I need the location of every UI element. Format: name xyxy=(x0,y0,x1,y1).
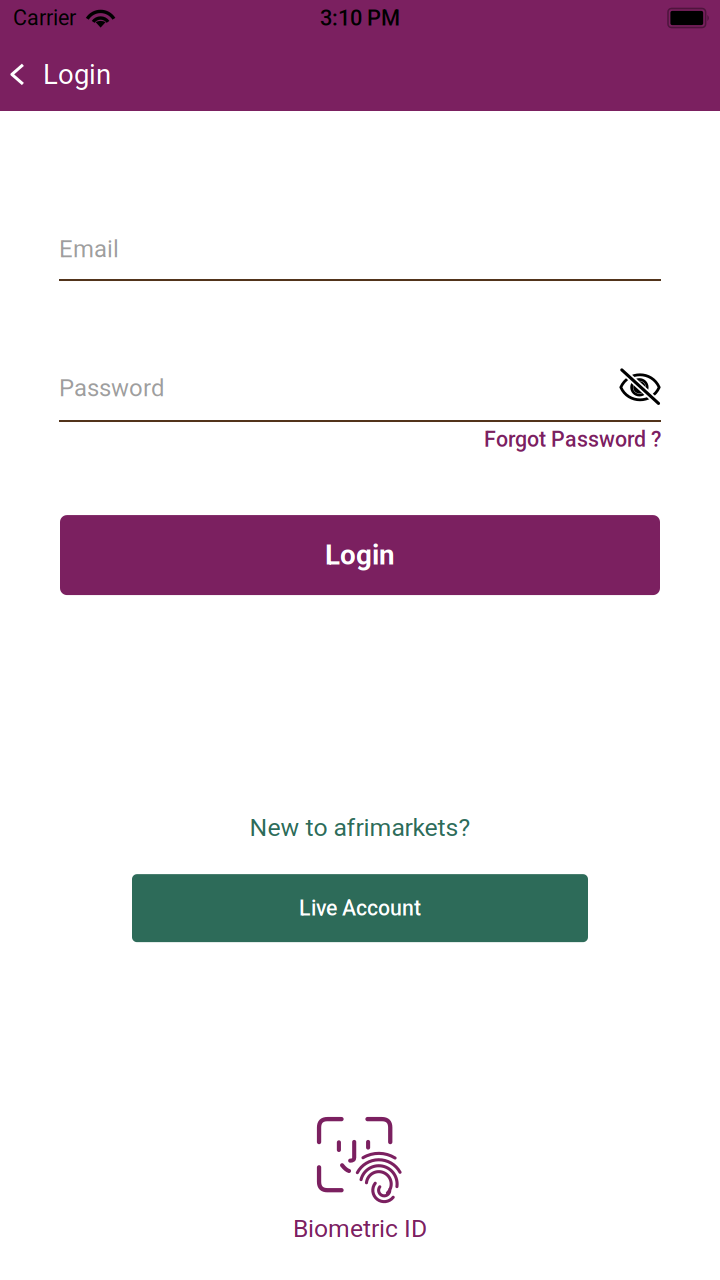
staticText: Carrier xyxy=(13,5,76,31)
button[interactable]: Live Account xyxy=(132,874,588,942)
staticText: Biometric ID xyxy=(293,1214,427,1243)
staticText: Forgot Password ? xyxy=(484,427,661,452)
staticText: Password xyxy=(59,374,164,402)
staticText: Live Account xyxy=(299,896,421,921)
staticText: New to afrimarkets? xyxy=(249,813,470,842)
staticText: 3:10 PM xyxy=(320,5,400,31)
button[interactable]: Back xyxy=(0,44,125,104)
button[interactable]: Forgot Password ? xyxy=(484,422,661,454)
staticText: Login xyxy=(325,539,395,571)
staticText: Login xyxy=(43,58,111,91)
button[interactable]: Biometric ID xyxy=(293,1116,427,1243)
staticText: Email xyxy=(59,235,119,263)
button[interactable]: Show password xyxy=(619,368,661,406)
button[interactable]: Login xyxy=(60,515,660,595)
